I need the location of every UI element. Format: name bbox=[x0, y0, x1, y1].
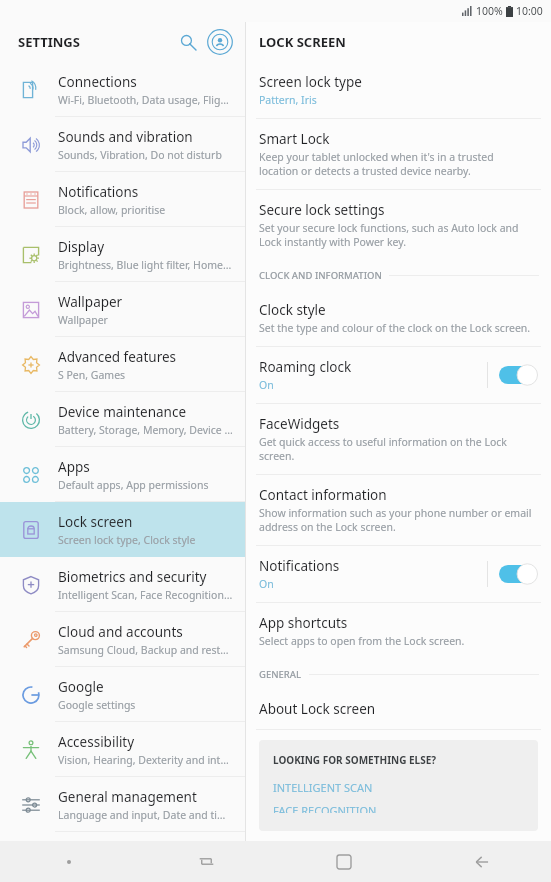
button[interactable]: Contact information bbox=[246, 475, 551, 545]
button[interactable]: App shortcuts bbox=[246, 603, 551, 659]
staticText: Lock screen bbox=[58, 513, 133, 531]
button[interactable]: Accessibility bbox=[0, 722, 245, 777]
button[interactable]: Back bbox=[413, 841, 551, 882]
staticText: Smart Lock bbox=[259, 130, 330, 148]
button[interactable]: Roaming clock bbox=[246, 347, 551, 403]
staticText: Roaming clock bbox=[259, 358, 352, 376]
staticText: Connections bbox=[58, 73, 137, 91]
staticText: Accessibility bbox=[58, 733, 135, 751]
staticText: On bbox=[259, 378, 274, 392]
staticText: Screen lock type bbox=[259, 73, 362, 91]
staticText: Default apps, App permissions bbox=[58, 478, 209, 492]
button[interactable]: Display bbox=[0, 227, 245, 282]
staticText: Sounds, Vibration, Do not disturb bbox=[58, 148, 222, 162]
button[interactable]: Apps bbox=[0, 447, 245, 502]
staticText: Advanced features bbox=[58, 348, 177, 366]
staticText: Clock style bbox=[259, 301, 326, 319]
button[interactable]: FaceWidgets bbox=[246, 404, 551, 474]
staticText: Show information such as your phone numb… bbox=[259, 506, 535, 534]
staticText: Get quick access to useful information o… bbox=[259, 435, 535, 463]
staticText: Secure lock settings bbox=[259, 201, 385, 219]
button[interactable]: Wallpaper bbox=[0, 282, 245, 337]
button[interactable]: Search bbox=[173, 27, 203, 57]
staticText: Wallpaper bbox=[58, 293, 123, 311]
staticText: Device maintenance bbox=[58, 403, 187, 421]
staticText: Select apps to open from the Lock screen… bbox=[259, 634, 465, 648]
staticText: Google bbox=[58, 678, 104, 696]
button[interactable]: Notifications bbox=[0, 172, 245, 227]
staticText: 100% bbox=[476, 4, 503, 18]
staticText: Apps bbox=[58, 458, 90, 476]
staticText: On bbox=[259, 577, 274, 591]
button[interactable]: Device maintenance bbox=[0, 392, 245, 447]
staticText: Wallpaper bbox=[58, 313, 108, 327]
button[interactable]: Screen lock type bbox=[246, 62, 551, 118]
staticText: Notifications bbox=[259, 557, 340, 575]
staticText: Contact information bbox=[259, 486, 387, 504]
staticText: Notifications bbox=[58, 183, 139, 201]
staticText: S Pen, Games bbox=[58, 368, 126, 382]
staticText: Screen lock type, Clock style bbox=[58, 533, 196, 547]
staticText: Intelligent Scan, Face Recognition,… bbox=[58, 588, 233, 602]
staticText: Wi-Fi, Bluetooth, Data usage, Flight… bbox=[58, 93, 233, 107]
staticText: Vision, Hearing, Dexterity and intera… bbox=[58, 753, 233, 767]
staticText: Biometrics and security bbox=[58, 568, 207, 586]
button[interactable]: FACE RECOGNITION bbox=[273, 799, 524, 817]
button[interactable]: Lock screen bbox=[0, 502, 245, 557]
staticText: INTELLIGENT SCAN bbox=[273, 780, 373, 795]
staticText: Samsung Cloud, Backup and restor… bbox=[58, 643, 233, 657]
button[interactable]: Notifications toggle bbox=[499, 563, 537, 585]
staticText: Google settings bbox=[58, 698, 136, 712]
staticText: Pattern, Iris bbox=[259, 93, 317, 107]
staticText: Set your secure lock functions, such as … bbox=[259, 221, 535, 249]
button[interactable]: Sounds and vibration bbox=[0, 117, 245, 172]
button[interactable]: Google bbox=[0, 667, 245, 722]
staticText: SETTINGS bbox=[18, 33, 80, 51]
staticText: Sounds and vibration bbox=[58, 128, 193, 146]
button[interactable]: Notifications bbox=[246, 546, 551, 602]
button[interactable]: Account bbox=[205, 27, 235, 57]
button[interactable]: Cloud and accounts bbox=[0, 612, 245, 667]
button[interactable]: Home bbox=[275, 841, 413, 882]
button[interactable]: Smart Lock bbox=[246, 119, 551, 189]
button[interactable]: Advanced features bbox=[0, 337, 245, 392]
button[interactable]: Clock style bbox=[246, 290, 551, 346]
staticText: Language and input, Date and time,… bbox=[58, 808, 233, 822]
staticText: LOCK SCREEN bbox=[259, 33, 346, 51]
staticText: Keep your tablet unlocked when it's in a… bbox=[259, 150, 535, 178]
button[interactable]: Recents bbox=[137, 841, 275, 882]
button[interactable]: General management bbox=[0, 777, 245, 832]
staticText: Cloud and accounts bbox=[58, 623, 183, 641]
button[interactable]: Secure lock settings bbox=[246, 190, 551, 260]
staticText: CLOCK AND INFORMATION bbox=[259, 269, 382, 282]
button[interactable]: Roaming clock toggle bbox=[499, 364, 537, 386]
staticText: FaceWidgets bbox=[259, 415, 340, 433]
staticText: General management bbox=[58, 788, 197, 806]
staticText: Set the type and colour of the clock on … bbox=[259, 321, 531, 335]
staticText: FACE RECOGNITION bbox=[273, 803, 377, 813]
staticText: Battery, Storage, Memory, Device se… bbox=[58, 423, 233, 437]
staticText: GENERAL bbox=[259, 668, 302, 681]
staticText: LOOKING FOR SOMETHING ELSE? bbox=[273, 753, 437, 767]
staticText: About Lock screen bbox=[259, 700, 376, 718]
button[interactable]: Connections bbox=[0, 62, 245, 117]
staticText: 10:00 bbox=[516, 4, 543, 18]
button[interactable]: INTELLIGENT SCAN bbox=[273, 776, 524, 799]
staticText: Block, allow, prioritise bbox=[58, 203, 166, 217]
staticText: Display bbox=[58, 238, 105, 256]
button[interactable]: About Lock screen bbox=[246, 689, 551, 729]
staticText: Brightness, Blue light filter, Home sc… bbox=[58, 258, 233, 272]
button[interactable]: Biometrics and security bbox=[0, 557, 245, 612]
staticText: App shortcuts bbox=[259, 614, 348, 632]
